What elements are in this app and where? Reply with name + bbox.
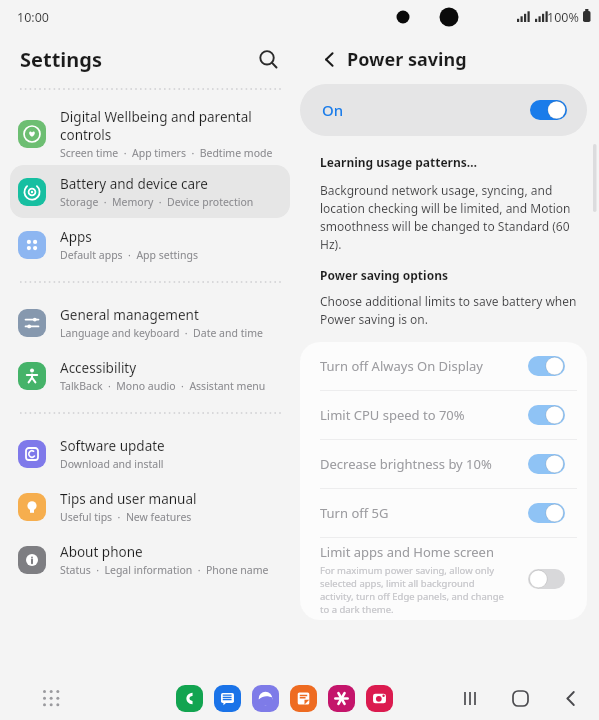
staticText: Status · Legal information · Phone name: [60, 563, 269, 577]
staticText: Power saving: [347, 47, 467, 72]
staticText: On: [322, 100, 344, 120]
button[interactable]: Software update: [10, 427, 290, 480]
staticText: Power saving options: [320, 267, 448, 283]
staticText: 100%: [547, 9, 579, 26]
staticText: Apps: [60, 228, 92, 246]
button[interactable]: Search: [247, 38, 289, 80]
staticText: Language and keyboard · Date and time: [60, 326, 263, 340]
button[interactable]: Turn off 5G: [300, 489, 587, 537]
button[interactable]: Apps: [10, 218, 290, 271]
staticText: Default apps · App settings: [60, 248, 198, 262]
button[interactable]: messages: [214, 685, 241, 712]
staticText: Battery and device care: [60, 175, 208, 193]
button[interactable]: Home: [505, 683, 535, 713]
staticText: Digital Wellbeing and parental: [60, 108, 252, 126]
staticText: Storage · Memory · Device protection: [60, 195, 254, 209]
staticText: Choose additional limits to save battery…: [320, 293, 577, 328]
staticText: General management: [60, 306, 199, 324]
button[interactable]: Recents: [455, 683, 485, 713]
button[interactable]: internet: [252, 685, 279, 712]
staticText: Learning usage patterns…: [320, 154, 477, 170]
staticText: 10:00: [17, 9, 49, 26]
button[interactable]: Back: [312, 42, 346, 76]
button[interactable]: phone: [176, 685, 203, 712]
staticText: Limit apps and Home screen: [320, 543, 494, 561]
button[interactable]: notes: [290, 685, 317, 712]
staticText: Background network usage, syncing, and l…: [320, 182, 571, 253]
staticText: Software update: [60, 437, 165, 455]
button[interactable]: Battery and device care: [10, 165, 290, 218]
button[interactable]: Tips and user manual: [10, 480, 290, 533]
button[interactable]: Limit CPU speed to 70%: [300, 391, 587, 439]
button[interactable]: Turn off Always On Display: [300, 342, 587, 390]
button[interactable]: flower: [328, 685, 355, 712]
staticText: Accessibility: [60, 359, 137, 377]
staticText: Settings: [20, 46, 102, 73]
staticText: TalkBack · Mono audio · Assistant menu: [60, 379, 266, 393]
button[interactable]: General management: [10, 296, 290, 349]
staticText: Turn off 5G: [320, 504, 389, 522]
button[interactable]: About phone: [10, 533, 290, 586]
button[interactable]: Limit apps and Home screen: [300, 538, 587, 620]
staticText: Decrease brightness by 10%: [320, 455, 492, 473]
staticText: Turn off Always On Display: [320, 357, 483, 375]
staticText: About phone: [60, 543, 143, 561]
button[interactable]: camera: [366, 685, 393, 712]
staticText: Download and install: [60, 457, 164, 471]
button[interactable]: Accessibility: [10, 349, 290, 402]
button[interactable]: Apps: [36, 683, 66, 713]
staticText: For maximum power saving, allow only sel…: [320, 564, 504, 616]
button[interactable]: Decrease brightness by 10%: [300, 440, 587, 488]
button[interactable]: Digital Wellbeing and parental: [10, 103, 290, 165]
staticText: Limit CPU speed to 70%: [320, 406, 465, 424]
staticText: Useful tips · New features: [60, 510, 192, 524]
button[interactable]: Back: [555, 683, 585, 713]
staticText: Screen time · App timers · Bedtime mode: [60, 146, 273, 160]
button[interactable]: On: [300, 84, 587, 136]
staticText: controls: [60, 126, 112, 144]
staticText: Tips and user manual: [60, 490, 197, 508]
